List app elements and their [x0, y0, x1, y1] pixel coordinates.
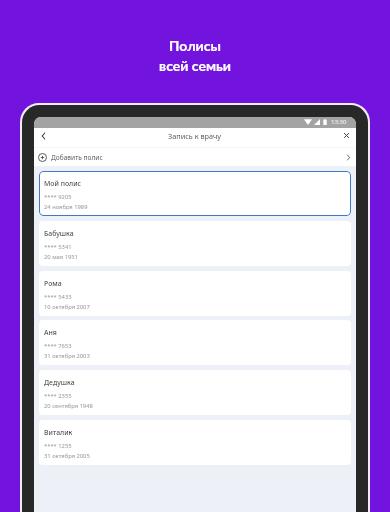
staticText: Бабушка — [44, 229, 74, 238]
staticText: Запись к врачу — [168, 131, 222, 141]
button[interactable]: Виталик — [39, 420, 351, 465]
staticText: Рома — [44, 279, 62, 288]
button[interactable]: Close — [334, 128, 356, 147]
staticText: **** 1255 — [44, 442, 72, 450]
staticText: 20 мая 1951 — [44, 253, 78, 261]
button[interactable]: Бабушка — [39, 221, 351, 266]
staticText: 10 октября 2007 — [44, 303, 90, 311]
staticText: 24 ноября 1989 — [44, 203, 88, 211]
staticText: **** 5341 — [44, 243, 72, 251]
staticText: Добавить полис — [51, 153, 103, 162]
staticText: 20 сентября 1948 — [44, 402, 93, 410]
staticText: 31 октября 2005 — [44, 452, 90, 460]
staticText: Виталик — [44, 428, 73, 437]
staticText: **** 5433 — [44, 293, 72, 301]
staticText: всей семьи — [159, 57, 231, 74]
staticText: Дедушка — [44, 378, 75, 387]
staticText: Аня — [44, 328, 57, 337]
button[interactable]: Back — [34, 128, 53, 147]
button[interactable]: Мой полис — [39, 171, 351, 216]
staticText: 31 октября 2003 — [44, 352, 90, 360]
staticText: **** 9205 — [44, 193, 72, 201]
staticText: **** 7653 — [44, 342, 72, 350]
staticText: Мой полис — [44, 179, 82, 188]
staticText: 13:30 — [331, 118, 347, 126]
staticText: **** 2355 — [44, 392, 72, 400]
button[interactable]: Рома — [39, 271, 351, 316]
staticText: Полисы — [169, 37, 221, 54]
button[interactable]: Добавить полис — [34, 148, 356, 166]
button[interactable]: Аня — [39, 320, 351, 365]
button[interactable]: Дедушка — [39, 370, 351, 415]
